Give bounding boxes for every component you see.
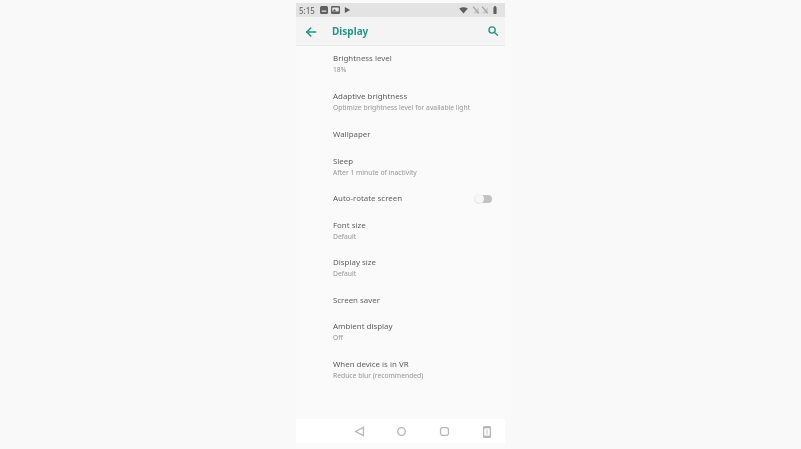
button[interactable]: Back [351,423,367,439]
staticText: Display [332,24,369,38]
staticText: 18% [333,65,347,74]
button[interactable]: Adaptive brightness [296,88,505,115]
button[interactable]: Home [393,423,409,439]
button[interactable]: Font size [296,217,505,244]
staticText: Sleep [333,156,354,167]
staticText: 5:15 [299,5,315,16]
button[interactable]: Sleep [296,153,505,180]
staticText: Brightness level [333,53,392,64]
button[interactable]: Back [301,22,320,41]
button[interactable]: Recent apps [436,423,452,439]
staticText: Display size [333,257,376,268]
staticText: Screen saver [333,295,380,306]
button[interactable]: Auto-rotate screen toggle [474,193,491,205]
staticText: After 1 minute of inactivity [333,168,417,177]
button[interactable]: Rotate screen [479,423,495,439]
staticText: Auto-rotate screen [333,193,403,204]
staticText: Wallpaper [333,129,371,140]
staticText: Font size [333,220,366,231]
staticText: Default [333,269,357,278]
button[interactable]: Auto-rotate screen [296,189,505,208]
staticText: Off [333,333,343,342]
button[interactable]: Brightness level [296,50,505,77]
staticText: Reduce blur (recommended) [333,371,424,380]
button[interactable]: Wallpaper [296,125,505,144]
button[interactable]: Display size [296,254,505,281]
button[interactable]: When device is in VR [296,356,505,383]
staticText: Ambient display [333,321,393,332]
button[interactable]: Search [483,21,502,40]
staticText: Optimize brightness level for available … [333,103,471,112]
staticText: Adaptive brightness [333,91,408,102]
button[interactable]: Ambient display [296,318,505,345]
staticText: When device is in VR [333,359,409,370]
button[interactable]: Screen saver [296,291,505,310]
staticText: Default [333,232,357,241]
